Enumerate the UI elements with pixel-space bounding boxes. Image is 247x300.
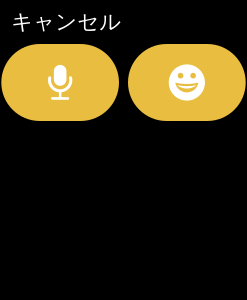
button[interactable]: Dictate xyxy=(1,44,119,121)
staticText: キャンセル xyxy=(11,9,121,35)
button[interactable]: キャンセル xyxy=(1,0,121,44)
button[interactable]: Emoji xyxy=(128,44,246,121)
